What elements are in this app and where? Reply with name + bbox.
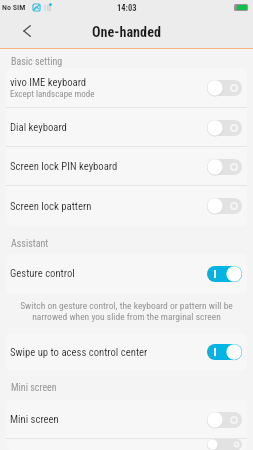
staticText: Mini screen xyxy=(10,413,59,426)
button[interactable]: Dial keyboard xyxy=(6,108,247,147)
staticText: Gesture control xyxy=(10,267,75,280)
button[interactable]: Back xyxy=(0,14,54,48)
staticText: Except landscape mode xyxy=(10,89,95,100)
button[interactable]: Screen lock PIN keyboard xyxy=(6,147,247,186)
staticText: 14:03 xyxy=(117,3,137,13)
staticText: Screen lock pattern xyxy=(10,200,92,213)
staticText: Screen lock PIN keyboard xyxy=(10,160,118,173)
staticText: Swipe up to acess control center xyxy=(10,346,148,359)
staticText: Assistant xyxy=(11,238,49,250)
button[interactable]: Switch off xyxy=(207,412,242,428)
button[interactable]: Switch off xyxy=(207,120,242,136)
button[interactable]: Swipe up to acess control center xyxy=(6,333,247,371)
button[interactable]: Switch on xyxy=(207,266,242,282)
button[interactable]: vivo IME keyboard xyxy=(6,68,247,108)
button[interactable]: Gesture control xyxy=(6,254,247,293)
button[interactable]: Screen lock pattern xyxy=(6,186,247,226)
button[interactable]: Switch off xyxy=(207,439,242,450)
staticText: No SIM xyxy=(2,3,26,12)
staticText: vivo IME keyboard xyxy=(10,76,87,89)
staticText: One-handed xyxy=(92,24,161,41)
button[interactable]: Switch off xyxy=(207,80,242,96)
staticText: Basic setting xyxy=(11,56,63,68)
button[interactable]: Mini screen xyxy=(6,400,247,439)
button[interactable]: Switch off xyxy=(207,159,242,175)
staticText: Dial keyboard xyxy=(10,121,67,134)
button[interactable]: Switch off xyxy=(6,439,247,450)
staticText: Switch on gesture control, the keyboard … xyxy=(18,300,235,322)
button[interactable]: Switch off xyxy=(207,198,242,214)
staticText: Mini screen xyxy=(11,382,57,394)
button[interactable]: Switch on xyxy=(207,344,242,360)
